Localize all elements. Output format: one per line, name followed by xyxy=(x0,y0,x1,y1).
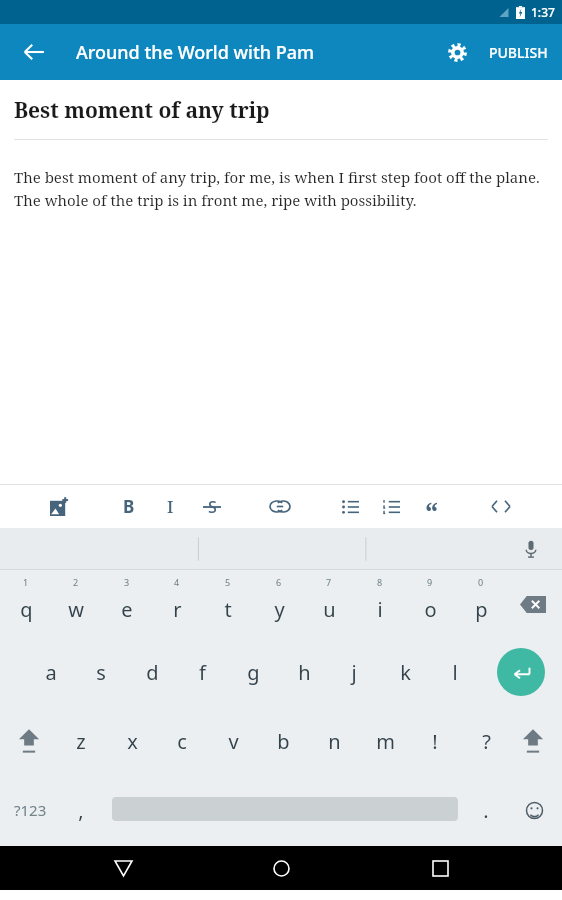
button[interactable]: s xyxy=(76,638,126,706)
button[interactable]: Link xyxy=(259,485,301,528)
staticText: . xyxy=(483,797,489,824)
button[interactable]: Shift xyxy=(5,706,53,776)
button[interactable]: 0 xyxy=(456,570,506,638)
staticText: 1:37 xyxy=(531,4,555,20)
button[interactable]: , xyxy=(56,776,106,844)
button[interactable]: Home xyxy=(245,846,317,890)
button[interactable]: 4 xyxy=(152,570,202,638)
staticText: ?123 xyxy=(14,800,47,820)
button[interactable]: Numbered list xyxy=(370,485,412,528)
staticText: m xyxy=(376,728,395,755)
button[interactable]: k xyxy=(380,638,430,706)
staticText: b xyxy=(277,728,290,755)
button[interactable]: a xyxy=(26,638,76,706)
staticText: d xyxy=(146,659,159,686)
button[interactable]: PUBLISH xyxy=(481,28,562,76)
button[interactable]: 7 xyxy=(304,570,354,638)
button[interactable]: 5 xyxy=(203,570,253,638)
button[interactable]: g xyxy=(228,638,278,706)
staticText: 4 xyxy=(174,576,180,588)
button[interactable]: Shift xyxy=(509,706,557,776)
staticText: 2 xyxy=(73,576,79,588)
button[interactable]: Bold xyxy=(108,485,150,528)
button[interactable]: ! xyxy=(410,706,460,776)
staticText: k xyxy=(400,659,411,686)
staticText: ! xyxy=(432,728,438,755)
staticText: w xyxy=(68,596,84,623)
button[interactable]: 9 xyxy=(405,570,455,638)
staticText: v xyxy=(228,728,239,755)
staticText: 9 xyxy=(427,576,433,588)
button[interactable]: Settings xyxy=(433,28,481,76)
staticText: 8 xyxy=(377,576,383,588)
button[interactable]: z xyxy=(56,706,106,776)
button[interactable]: Insert image xyxy=(38,485,80,528)
staticText: z xyxy=(76,728,86,755)
staticText: ? xyxy=(482,728,491,755)
button[interactable]: f xyxy=(177,638,227,706)
button[interactable]: Voice input xyxy=(514,532,548,566)
button[interactable]: 6 xyxy=(254,570,304,638)
button[interactable]: Enter xyxy=(497,648,545,696)
staticText: 6 xyxy=(276,576,282,588)
staticText: p xyxy=(475,596,488,623)
staticText: , xyxy=(78,797,84,824)
staticText: S xyxy=(208,496,217,518)
staticText: o xyxy=(424,596,437,623)
button[interactable]: b xyxy=(258,706,308,776)
button[interactable]: m xyxy=(360,706,410,776)
button[interactable]: j xyxy=(329,638,379,706)
button[interactable]: ?123 xyxy=(2,776,58,844)
button[interactable]: l xyxy=(430,638,480,706)
staticText: I xyxy=(167,495,174,518)
staticText: h xyxy=(298,659,311,686)
staticText: x xyxy=(127,728,138,755)
staticText: Around the World with Pam xyxy=(76,40,315,65)
button[interactable]: v xyxy=(208,706,258,776)
staticText: t xyxy=(224,596,232,623)
button[interactable]: Strikethrough xyxy=(191,485,233,528)
staticText: g xyxy=(247,659,260,686)
button[interactable]: 1 xyxy=(1,570,51,638)
button[interactable]: d xyxy=(127,638,177,706)
staticText: e xyxy=(121,596,133,623)
button[interactable]: c xyxy=(157,706,207,776)
staticText: r xyxy=(173,596,182,623)
staticText: l xyxy=(452,659,458,686)
button[interactable]: x xyxy=(107,706,157,776)
button[interactable]: Recent apps xyxy=(404,846,476,890)
staticText: “ xyxy=(425,493,439,530)
staticText: PUBLISH xyxy=(489,43,548,62)
staticText: c xyxy=(177,728,187,755)
staticText: Best moment of any trip xyxy=(14,96,270,125)
button[interactable]: . xyxy=(461,776,511,844)
staticText: B xyxy=(123,495,135,518)
button[interactable]: 8 xyxy=(355,570,405,638)
button[interactable]: 2 xyxy=(51,570,101,638)
button[interactable]: Quote xyxy=(411,485,453,528)
staticText: s xyxy=(96,659,106,686)
staticText: n xyxy=(328,728,341,755)
staticText: 3 xyxy=(124,576,130,588)
button[interactable]: Code xyxy=(480,485,522,528)
staticText: y xyxy=(274,596,285,623)
staticText: j xyxy=(351,659,357,686)
button[interactable]: Back xyxy=(87,846,159,890)
staticText: f xyxy=(199,659,206,686)
staticText: u xyxy=(323,596,336,623)
button[interactable]: Back xyxy=(10,28,58,76)
button[interactable]: Italic xyxy=(149,485,191,528)
staticText: 0 xyxy=(478,576,484,588)
button[interactable]: n xyxy=(309,706,359,776)
button[interactable]: Emoji xyxy=(512,776,556,844)
staticText: 5 xyxy=(225,576,231,588)
button[interactable]: ? xyxy=(461,706,511,776)
button[interactable]: Bulleted list xyxy=(329,485,371,528)
staticText: The best moment of any trip, for me, is … xyxy=(14,167,552,210)
staticText: 7 xyxy=(326,576,332,588)
button[interactable]: 3 xyxy=(102,570,152,638)
button[interactable]: h xyxy=(279,638,329,706)
staticText: a xyxy=(45,659,57,686)
button[interactable]: Backspace xyxy=(509,570,557,638)
